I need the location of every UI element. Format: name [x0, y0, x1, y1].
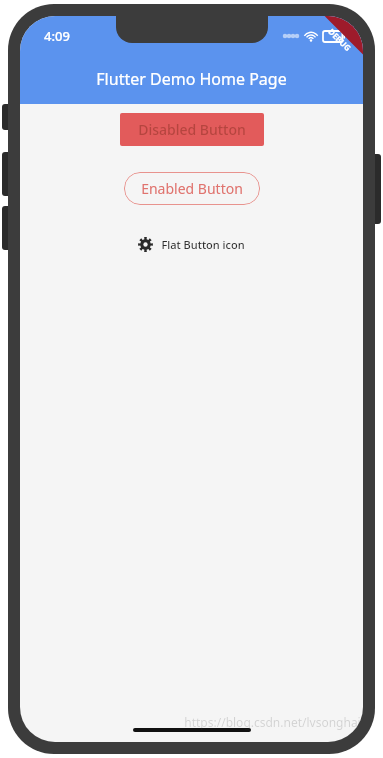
button[interactable]: Flat Button icon — [130, 231, 253, 258]
staticText: https://blog.csdn.net/lvsonghai — [184, 714, 361, 730]
staticText: Flat Button icon — [161, 237, 245, 252]
button[interactable]: Disabled Button — [120, 113, 264, 146]
button[interactable]: Enabled Button — [124, 172, 260, 205]
staticText: Flutter Demo Home Page — [96, 68, 287, 90]
staticText: DEBUG — [326, 26, 354, 53]
staticText: Enabled Button — [141, 179, 243, 198]
staticText: 4:09 — [44, 27, 70, 45]
staticText: Disabled Button — [138, 120, 246, 139]
